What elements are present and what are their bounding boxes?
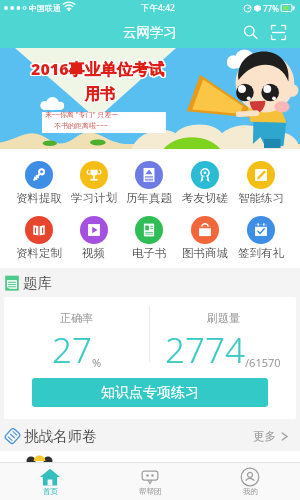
staticText: 77% [263, 3, 279, 14]
staticText: 用书 [84, 84, 114, 103]
staticText: 2016事业单位考试 [30, 57, 164, 79]
staticText: 帮帮团 [139, 487, 162, 496]
staticText: 云网学习 [123, 24, 177, 41]
staticText: 2016事业单位考试 [32, 57, 166, 79]
staticText: 用书 [86, 84, 116, 103]
staticText: 用书 [85, 85, 115, 104]
button[interactable]: 考友切磋 [177, 161, 233, 205]
staticText: 我的 [243, 487, 258, 496]
staticText: 挑战名师卷 [24, 427, 97, 445]
button[interactable]: 历年真题 [121, 161, 177, 205]
button[interactable]: 知识点专项练习 [32, 378, 268, 407]
staticText: 图书商城 [182, 246, 228, 260]
staticText: 视频 [82, 246, 105, 260]
button[interactable]: 电子书 [121, 216, 177, 260]
staticText: 智能练习 [238, 191, 284, 205]
button[interactable]: 帮帮团 [100, 463, 200, 500]
staticText: 签到有礼 [238, 246, 284, 260]
staticText: 中国联通 [29, 3, 61, 13]
button[interactable]: 学习计划 [66, 161, 121, 205]
staticText: 2016事业单位考试 [31, 58, 165, 80]
button[interactable]: 我的 [200, 463, 300, 500]
staticText: 用书 [84, 85, 114, 104]
button[interactable]: Scan QR code [264, 18, 292, 46]
staticText: 资料定制 [16, 246, 62, 260]
staticText: 首页 [43, 487, 58, 496]
staticText: 来~~你离 "专门" 只差一 [45, 110, 119, 120]
staticText: 用书 [86, 85, 116, 104]
button[interactable]: 签到有礼 [233, 216, 289, 260]
staticText: 电子书 [132, 246, 167, 260]
staticText: 用书 [86, 86, 116, 105]
staticText: 题库 [23, 274, 52, 292]
staticText: 2016事业单位考试 [30, 59, 164, 81]
staticText: 正确率 [60, 311, 93, 325]
button[interactable]: 图书商城 [177, 216, 233, 260]
staticText: 用书 [84, 86, 114, 105]
button[interactable]: 资料定制 [11, 216, 66, 260]
staticText: % [92, 355, 102, 370]
button[interactable]: 2016事业单位考试 [0, 48, 300, 149]
button[interactable]: 首页 [0, 463, 100, 500]
staticText: 用书 [85, 84, 115, 103]
staticText: 刷题量 [207, 311, 240, 325]
staticText: 2774 [165, 326, 245, 374]
staticText: 更多 [253, 429, 276, 443]
button[interactable]: 资料提取 [11, 161, 66, 205]
staticText: 学习计划 [71, 191, 117, 205]
staticText: 知识点专项练习 [101, 384, 199, 402]
staticText: 2016事业单位考试 [32, 58, 166, 80]
staticText: 2016事业单位考试 [31, 57, 165, 79]
staticText: 资料提取 [16, 191, 62, 205]
staticText: /61570 [245, 355, 281, 370]
staticText: 历年真题 [126, 191, 172, 205]
staticText: 2016事业单位考试 [30, 58, 164, 80]
button[interactable]: Search [236, 18, 264, 46]
button[interactable]: 挑战名师卷 [5, 421, 289, 451]
staticText: 2016事业单位考试 [31, 59, 165, 81]
staticText: 考友切磋 [182, 191, 228, 205]
button[interactable]: 智能练习 [233, 161, 289, 205]
staticText: 用书 [85, 86, 115, 105]
button[interactable]: 视频 [66, 216, 121, 260]
staticText: 2016事业单位考试 [32, 59, 166, 81]
staticText: 下午4:42 [141, 2, 175, 14]
staticText: 27 [52, 326, 92, 374]
staticText: 不书的距离啦~~~ [54, 121, 109, 131]
